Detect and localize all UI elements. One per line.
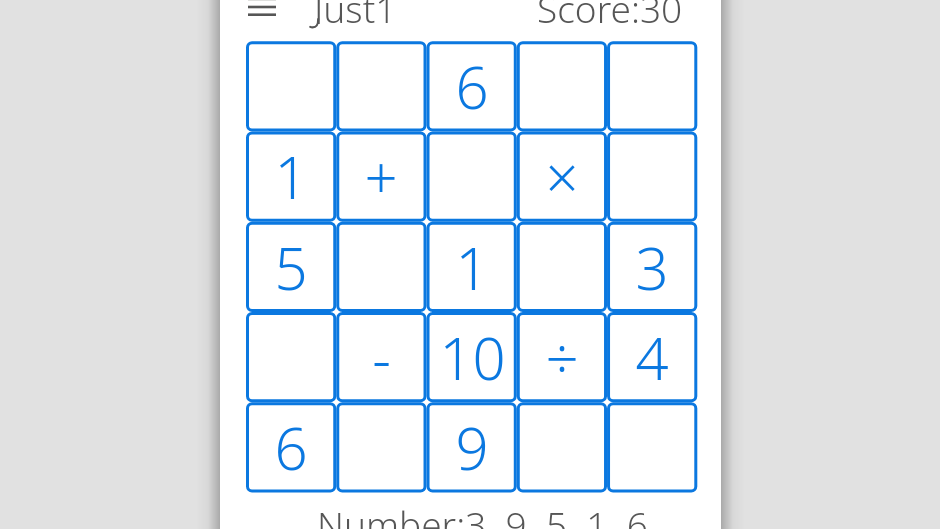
button[interactable] — [336, 402, 426, 492]
button[interactable]: 6 — [246, 402, 336, 492]
staticText: 6 — [274, 408, 308, 487]
staticText: Score:30 — [537, 0, 683, 24]
button[interactable]: ÷ — [517, 312, 607, 402]
button[interactable] — [607, 402, 697, 492]
button[interactable]: 1 — [246, 131, 336, 221]
staticText: 3 — [635, 228, 669, 307]
button[interactable] — [517, 41, 607, 131]
button[interactable]: 5 — [246, 222, 336, 312]
button[interactable]: - — [336, 312, 426, 402]
staticText: × — [545, 137, 579, 216]
staticText: 1 — [455, 228, 489, 307]
button[interactable] — [246, 312, 336, 402]
button[interactable] — [336, 222, 426, 312]
button[interactable]: 4 — [607, 312, 697, 402]
staticText: 9 — [455, 408, 489, 487]
button[interactable]: 6 — [427, 41, 517, 131]
staticText: 5 — [274, 228, 308, 307]
staticText: ÷ — [545, 318, 579, 397]
button[interactable]: + — [336, 131, 426, 221]
button[interactable] — [517, 222, 607, 312]
staticText: + — [364, 137, 398, 216]
staticText: 4 — [635, 318, 669, 397]
staticText: 1 — [274, 137, 308, 216]
button[interactable] — [517, 402, 607, 492]
button[interactable]: 1 — [427, 222, 517, 312]
staticText: 10 — [439, 318, 506, 397]
button[interactable] — [607, 41, 697, 131]
button[interactable]: × — [517, 131, 607, 221]
button[interactable] — [246, 41, 336, 131]
button[interactable]: 9 — [427, 402, 517, 492]
button[interactable] — [427, 131, 517, 221]
button[interactable]: 3 — [607, 222, 697, 312]
button[interactable]: 10 — [427, 312, 517, 402]
staticText: Number:3 9 5 1 6 — [317, 499, 648, 529]
staticText: 6 — [455, 47, 489, 126]
button[interactable] — [336, 41, 426, 131]
button[interactable]: Open navigation menu — [238, 0, 282, 23]
staticText: - — [372, 318, 391, 397]
button[interactable] — [607, 131, 697, 221]
staticText: Just1 — [314, 0, 397, 24]
